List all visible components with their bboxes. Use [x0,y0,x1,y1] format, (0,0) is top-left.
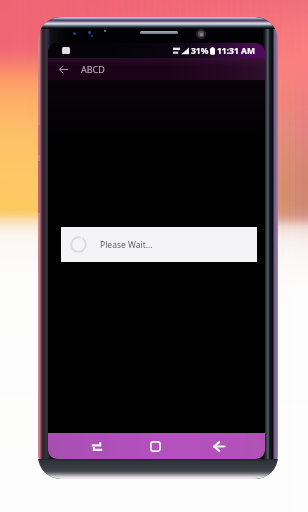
button[interactable]: Navigate up [54,60,72,78]
button[interactable]: Recent apps [68,433,125,459]
staticText: 11:31 AM [217,45,255,57]
button[interactable]: Home [127,433,184,459]
staticText: ABCD [81,63,105,75]
button[interactable]: Back [190,433,247,459]
staticText: 31% [191,45,209,57]
staticText: Please Wait... [100,239,153,251]
